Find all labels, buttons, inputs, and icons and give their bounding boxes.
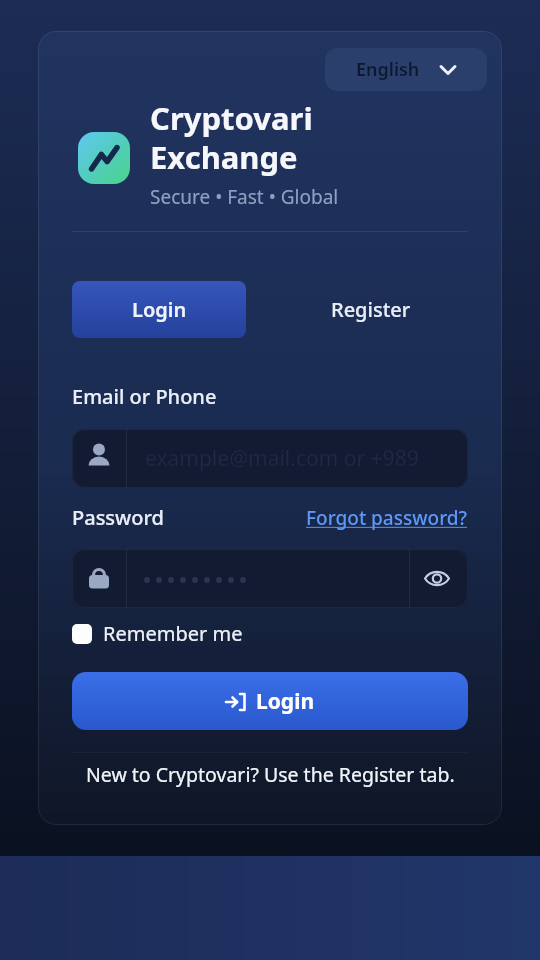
button[interactable]: example@mail.com or +989 (72, 429, 468, 488)
staticText: Login (256, 687, 315, 716)
staticText: example@mail.com or +989 (145, 444, 419, 473)
staticText: Password (72, 504, 164, 531)
button[interactable]: Login (72, 281, 246, 338)
staticText: Email or Phone (72, 383, 217, 410)
staticText: Register (331, 296, 411, 323)
staticText: New to Cryptovari? Use the Register tab. (86, 761, 455, 788)
button[interactable]: Remember me (72, 620, 243, 647)
staticText: Remember me (103, 620, 243, 647)
button[interactable]: Register (274, 281, 468, 338)
staticText: Secure • Fast • Global (150, 184, 339, 210)
button[interactable] (72, 549, 468, 608)
button[interactable] (409, 549, 468, 608)
staticText: Exchange (150, 136, 298, 178)
staticText: Login (132, 296, 187, 323)
button[interactable]: Forgot password? (306, 505, 468, 531)
staticText: Cryptovari (150, 97, 313, 139)
button[interactable]: English (325, 48, 487, 91)
staticText: English (356, 57, 420, 82)
button[interactable]: Login (72, 672, 468, 730)
